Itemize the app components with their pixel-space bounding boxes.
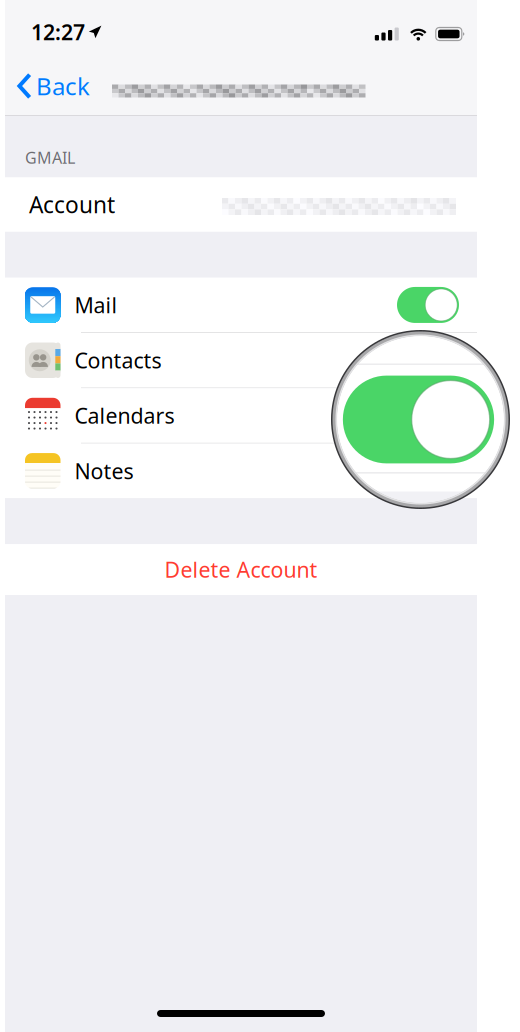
staticText: 12:27: [31, 18, 85, 46]
staticText: Delete Account: [164, 555, 317, 584]
button[interactable]: Contacts: [5, 333, 477, 387]
button[interactable]: Notes: [5, 444, 477, 498]
staticText: GMAIL: [25, 147, 75, 168]
staticText: Mail: [74, 291, 117, 319]
button[interactable]: Calendars: [5, 388, 477, 443]
staticText: Calendars: [74, 401, 174, 430]
staticText: Back: [36, 70, 90, 102]
button[interactable]: Mail: [5, 278, 477, 332]
staticText: Contacts: [74, 346, 161, 374]
staticText: Account: [29, 189, 115, 219]
button[interactable]: Delete Account: [5, 544, 477, 595]
button[interactable]: Back: [5, 62, 100, 110]
staticText: Notes: [74, 457, 133, 485]
button[interactable]: Account: [5, 177, 477, 232]
